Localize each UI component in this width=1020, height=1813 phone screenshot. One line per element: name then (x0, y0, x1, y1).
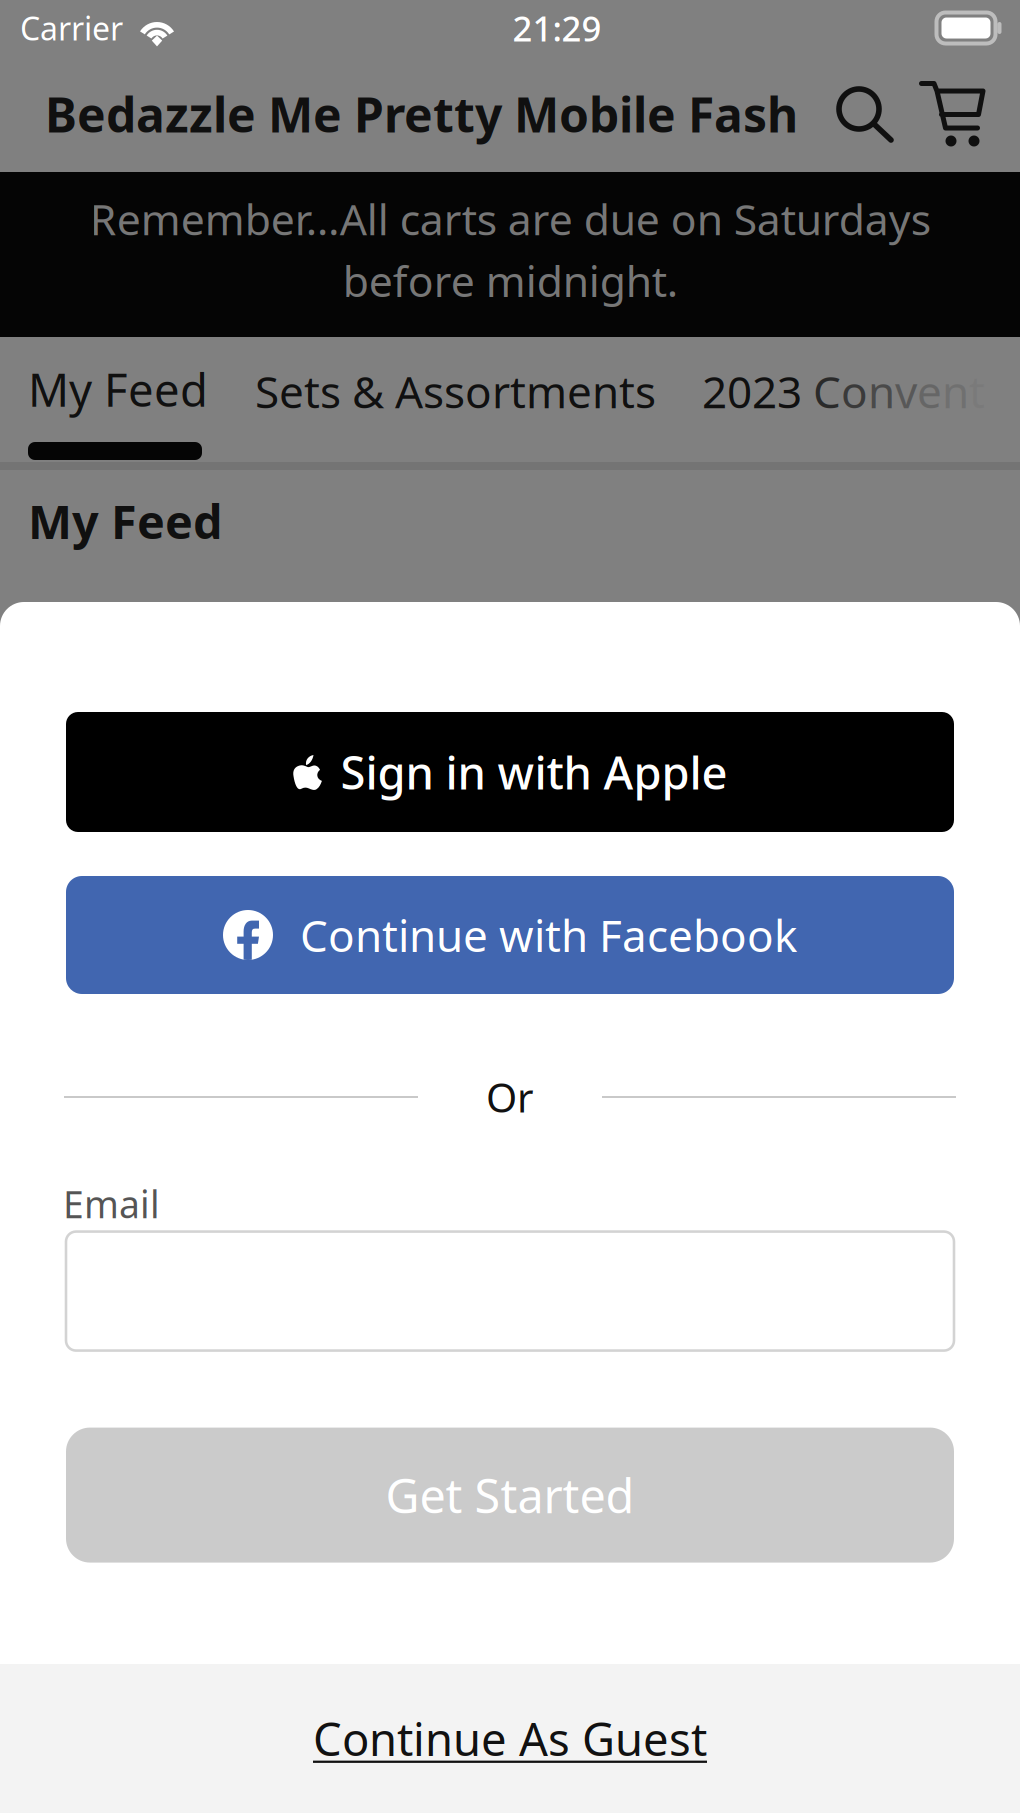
button[interactable]: My Feed (28, 359, 204, 419)
button[interactable]: Sign in with Apple (66, 712, 954, 832)
button[interactable]: Get Started (66, 1428, 954, 1563)
staticText: 21:29 (512, 5, 601, 51)
staticText: Email (63, 1179, 160, 1229)
button[interactable]: Shopping cart (920, 81, 985, 147)
staticText: n (868, 362, 895, 420)
staticText: My Feed (28, 359, 208, 419)
staticText: Continue As Guest (313, 1708, 707, 1769)
staticText: v (895, 362, 917, 420)
staticText: Remember…All carts are due on Saturdays … (89, 190, 930, 309)
button[interactable]: Continue As Guest (0, 1664, 1020, 1813)
staticText: C (813, 362, 841, 420)
staticText: Or (486, 1070, 534, 1123)
staticText: o (841, 362, 868, 420)
staticText: Continue with Facebook (300, 906, 797, 964)
staticText: Sign in with Apple (340, 742, 727, 802)
staticText: e (917, 362, 942, 420)
staticText: Carrier (20, 7, 123, 49)
staticText: 2023 (702, 362, 813, 420)
staticText: Sets & Assortments (255, 362, 656, 420)
staticText: Bedazzle Me Pretty Mobile Fash (45, 82, 798, 146)
button[interactable]: 2023 (702, 362, 1020, 420)
staticText: Get Started (385, 1464, 634, 1526)
button[interactable]: Continue with Facebook (66, 876, 954, 994)
button[interactable]: Search (836, 86, 896, 146)
staticText: n (942, 362, 969, 420)
staticText: My Feed (28, 490, 222, 552)
button[interactable]: Sets & Assortments (255, 362, 651, 420)
